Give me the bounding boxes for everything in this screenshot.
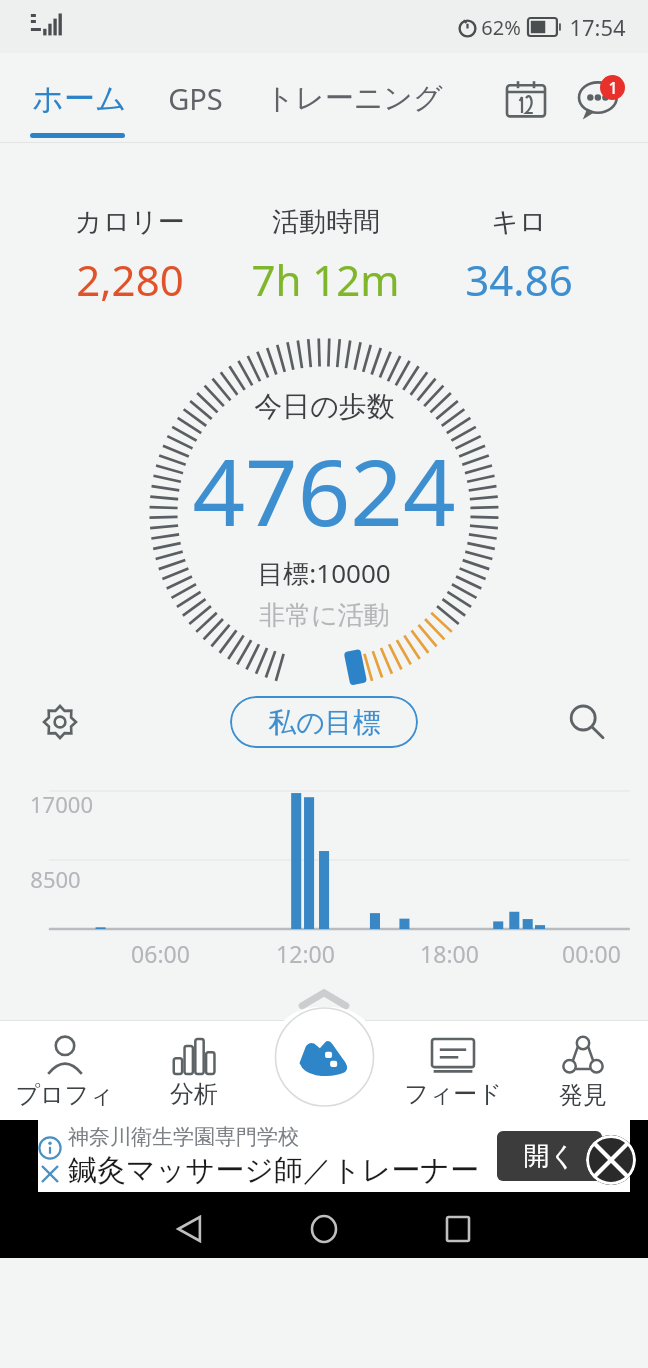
staticText: 2,280 [76,251,184,308]
staticText: フィード [404,1079,502,1109]
button[interactable]: ホーム [30,79,129,118]
button[interactable]: 開く [497,1131,602,1181]
button[interactable]: トレーニング [263,80,445,117]
staticText: 17000 [30,789,93,819]
staticText: 1 [608,77,618,99]
button[interactable]: 活動時間 [245,205,406,308]
staticText: 17:54 [569,12,626,42]
staticText: 発見 [559,1080,607,1110]
button[interactable]: Expand [0,980,648,1020]
staticText: キロ [491,205,547,239]
staticText: 鍼灸マッサージ師／トレーナー [68,1152,479,1189]
staticText: プロフィ [15,1080,114,1110]
staticText: 目標:10000 [257,555,391,591]
button[interactable]: Calendar [498,70,554,126]
staticText: 00:00 [562,938,621,969]
button[interactable]: Search [560,696,612,748]
button[interactable]: 私の目標 [230,696,418,748]
staticText: 12:00 [276,938,335,969]
staticText: 7h 12m [251,251,400,308]
staticText: GPS [168,79,223,118]
staticText: 活動時間 [272,205,380,239]
staticText: 18:00 [420,938,479,969]
staticText: 06:00 [131,938,190,969]
staticText: 34.86 [465,251,573,308]
button[interactable]: Home [288,1200,360,1258]
button[interactable]: キロ [459,205,579,308]
button[interactable]: プロフィ [0,1020,129,1120]
staticText: 神奈川衛生学園専門学校 [68,1124,299,1150]
button[interactable]: カロリー [69,205,191,308]
button[interactable]: Recents [422,1200,494,1258]
staticText: 47624 [192,428,456,553]
staticText: 8500 [30,864,81,894]
button[interactable]: Back [154,1200,226,1258]
staticText: 非常に活動 [259,599,390,632]
button[interactable]: Messages [572,68,632,128]
staticText: ホーム [32,79,127,118]
button[interactable]: GPS [166,79,225,118]
button[interactable]: 発見 [518,1020,648,1120]
button[interactable]: 分析 [129,1020,258,1120]
button[interactable]: Close ad [586,1135,636,1185]
button[interactable]: Activity [268,1007,381,1107]
staticText: 開く [523,1140,576,1173]
staticText: 今日の歩数 [254,389,395,424]
staticText: カロリー [75,205,185,239]
staticText: 私の目標 [268,705,381,740]
button[interactable]: Settings [34,696,86,748]
button[interactable]: フィード [388,1020,518,1120]
staticText: 分析 [170,1079,218,1109]
staticText: トレーニング [265,80,443,117]
staticText: 62% [481,14,521,41]
